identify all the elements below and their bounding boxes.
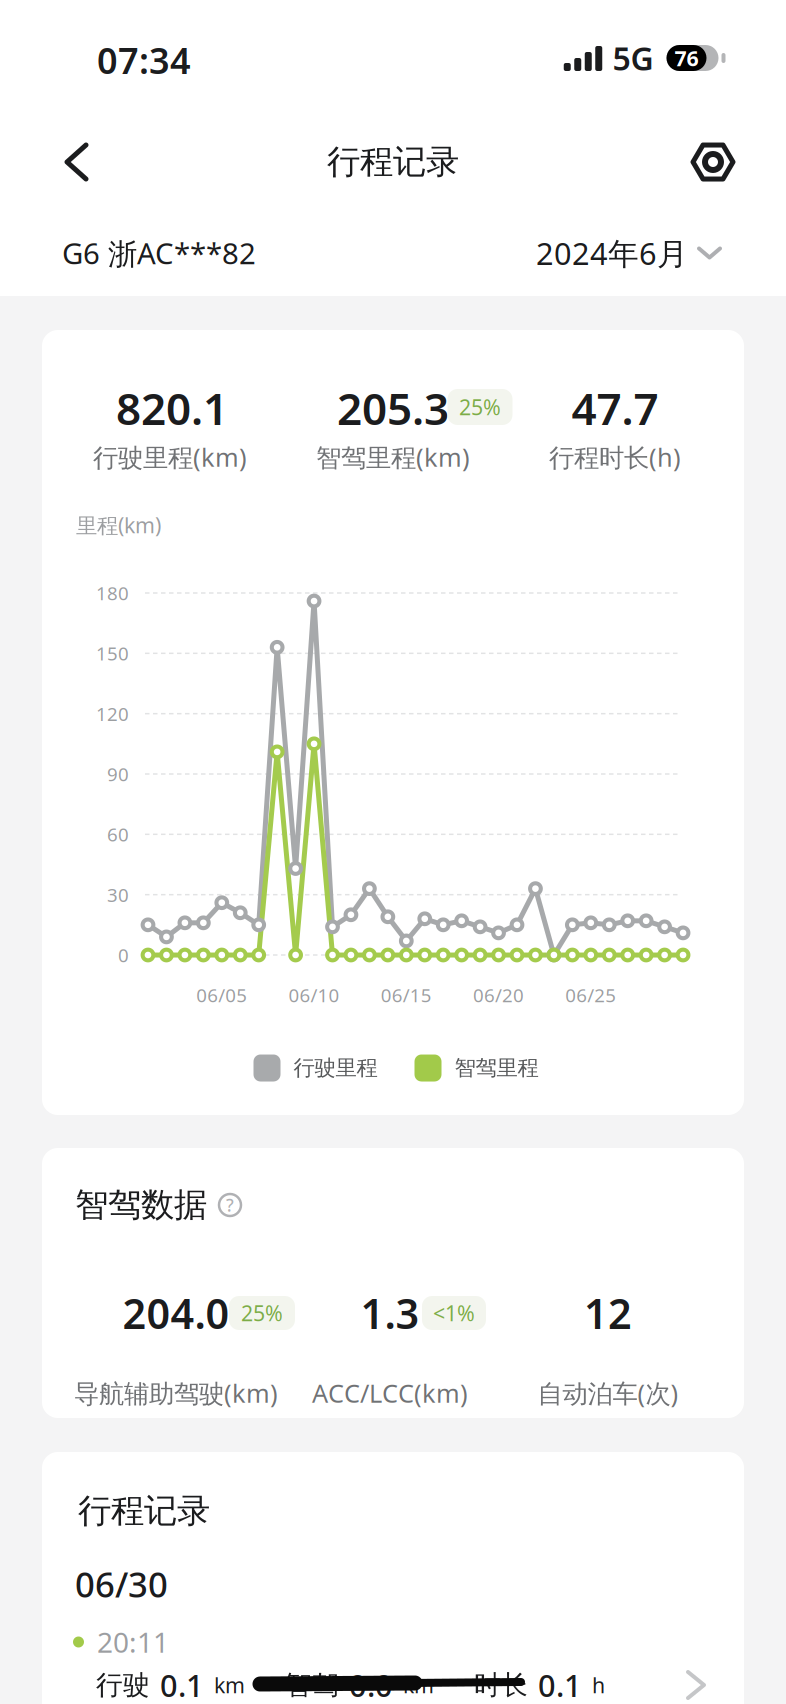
staticText: 智驾数据 xyxy=(75,1184,207,1225)
staticText: 06/30 xyxy=(75,1561,168,1607)
staticText: 06/05 xyxy=(196,983,247,1007)
staticText: km xyxy=(403,1671,434,1699)
staticText: 5G xyxy=(612,37,653,79)
staticText: 行驶里程 xyxy=(293,1055,377,1081)
staticText: 时长 xyxy=(474,1669,528,1701)
staticText: 205.3 xyxy=(337,379,449,437)
staticText: 06/15 xyxy=(381,983,432,1007)
staticText: 25% xyxy=(241,1299,283,1327)
staticText: 07:34 xyxy=(97,36,191,84)
staticText: 30 xyxy=(107,882,129,907)
staticText: 行程记录 xyxy=(78,1490,210,1531)
button[interactable] xyxy=(46,132,106,192)
staticText: 行驶里程(km) xyxy=(93,440,247,474)
staticText: km xyxy=(214,1671,245,1699)
staticText: ? xyxy=(226,1193,234,1216)
staticText: G6 浙AC***82 xyxy=(62,233,256,272)
staticText: 12 xyxy=(584,1286,632,1340)
staticText: 06/25 xyxy=(565,983,616,1007)
button[interactable] xyxy=(683,132,743,192)
staticText: 行程记录 xyxy=(327,141,459,182)
staticText: 06/10 xyxy=(288,983,339,1007)
staticText: 180 xyxy=(96,581,129,605)
staticText: 76 xyxy=(674,44,698,72)
staticText: 20:11 xyxy=(97,1623,169,1661)
staticText: 导航辅助驾驶(km) xyxy=(74,1376,278,1410)
staticText: 47.7 xyxy=(571,379,658,437)
staticText: 里程(km) xyxy=(76,511,161,539)
staticText: 行程时长(h) xyxy=(549,440,681,474)
staticText: 0.0 xyxy=(349,1665,393,1704)
staticText: 0.1 xyxy=(538,1665,582,1704)
staticText: 智驾里程(km) xyxy=(316,440,470,474)
staticText: 行驶 xyxy=(96,1669,150,1701)
staticText: 204.0 xyxy=(122,1286,229,1340)
staticText: 智驾里程 xyxy=(454,1055,538,1081)
staticText: 1.3 xyxy=(360,1286,419,1340)
staticText: 820.1 xyxy=(116,379,228,437)
staticText: 60 xyxy=(107,822,129,847)
staticText: 0 xyxy=(118,943,129,967)
staticText: 智驾 xyxy=(285,1669,339,1701)
staticText: 2024年6月 xyxy=(536,233,688,273)
button[interactable]: 2024年6月 xyxy=(421,233,721,273)
staticText: h xyxy=(592,1671,605,1699)
staticText: <1% xyxy=(433,1299,475,1327)
staticText: 150 xyxy=(96,641,129,666)
staticText: 自动泊车(次) xyxy=(537,1376,678,1410)
staticText: 25% xyxy=(459,393,501,421)
staticText: ACC/LCC(km) xyxy=(312,1376,468,1410)
button[interactable]: ? xyxy=(217,1192,243,1218)
staticText: 06/20 xyxy=(473,983,524,1007)
staticText: 120 xyxy=(96,701,129,726)
staticText: 0.1 xyxy=(160,1665,204,1704)
staticText: 90 xyxy=(107,762,129,786)
button[interactable]: 行驶 xyxy=(42,1642,744,1704)
